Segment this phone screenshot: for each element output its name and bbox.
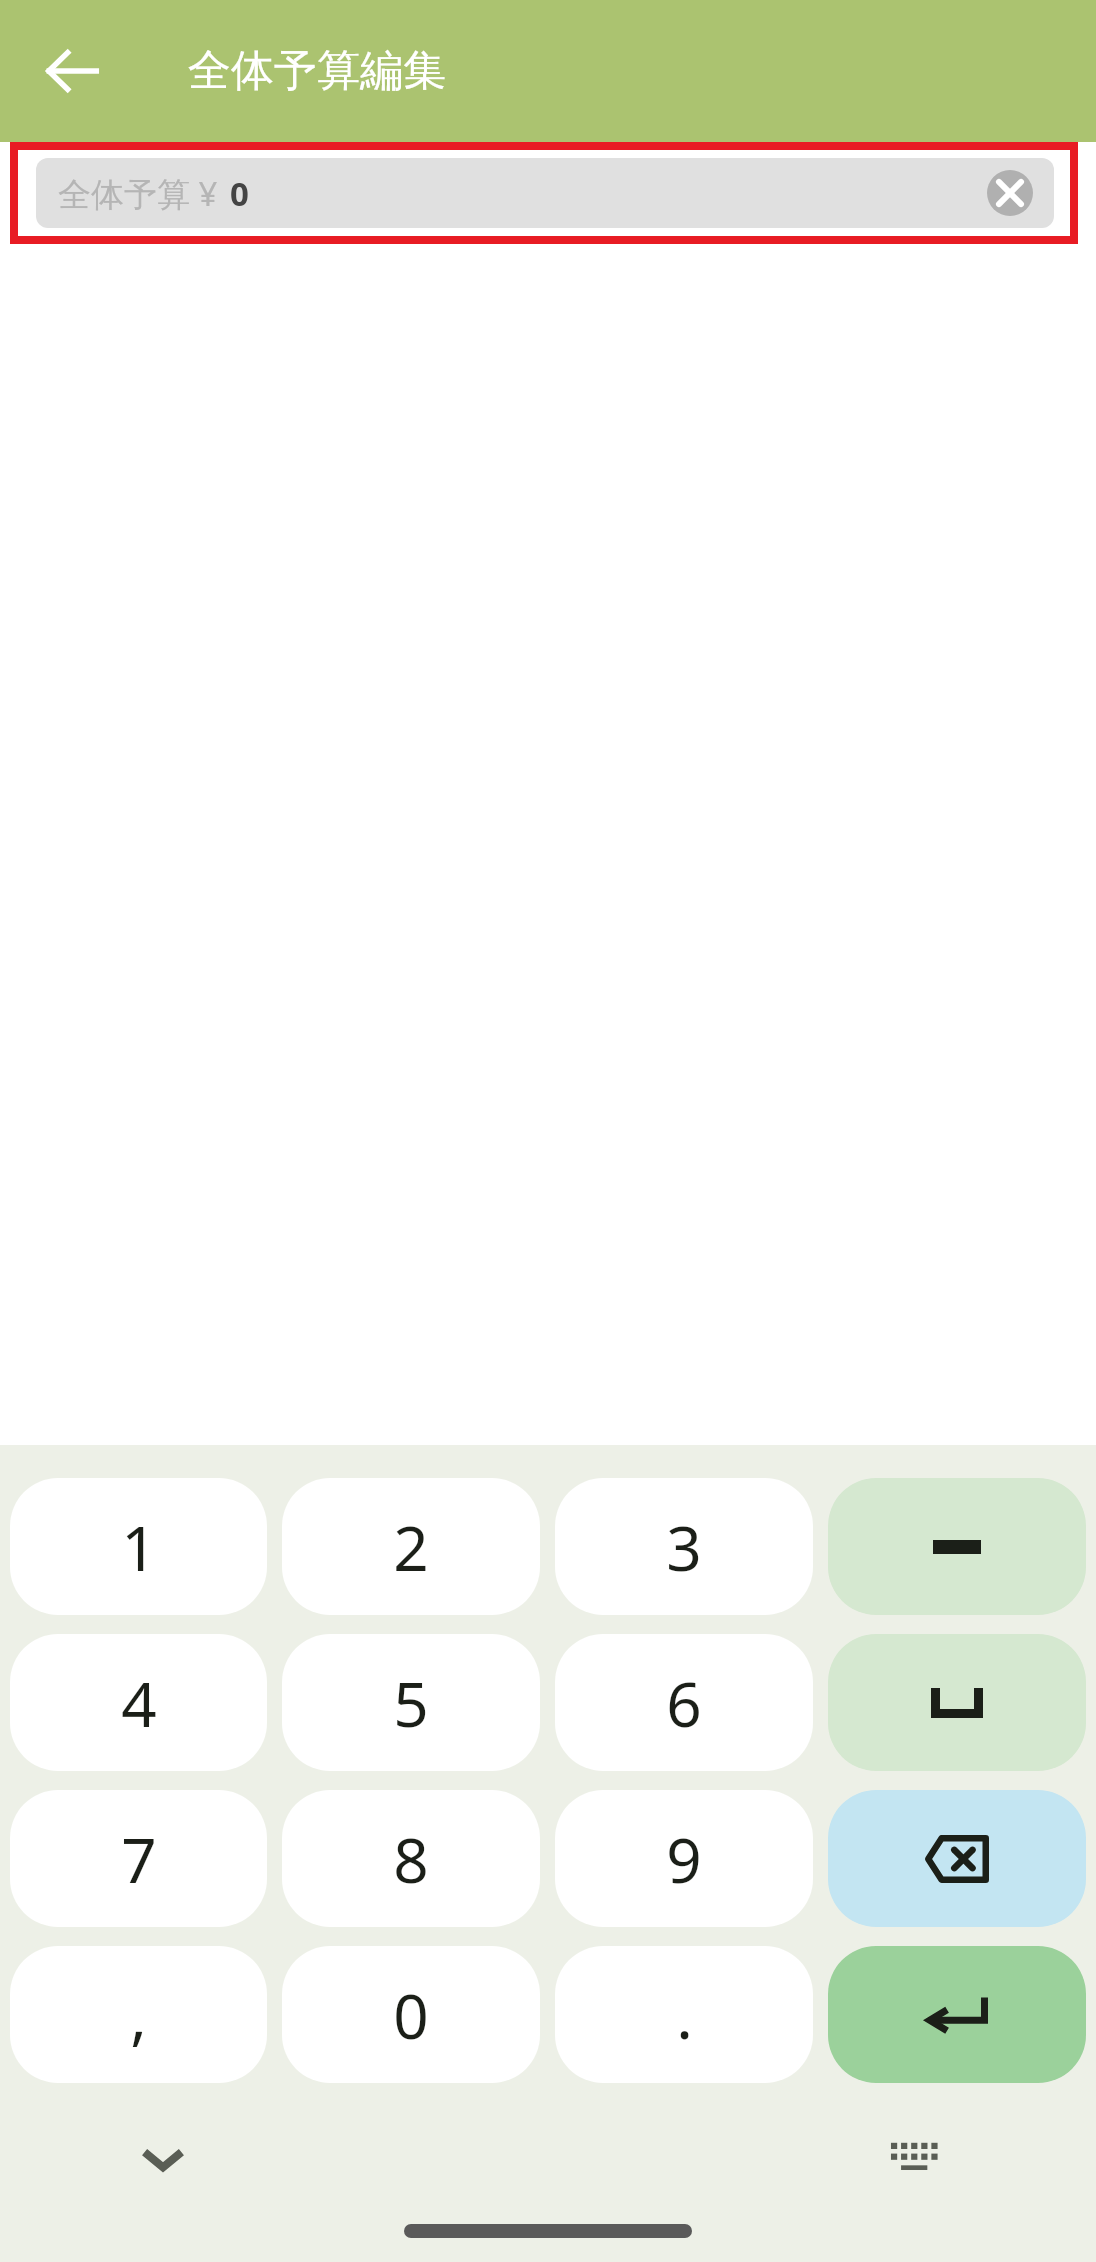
button[interactable]: 0 [282,1946,540,2083]
button[interactable]: 全体予算 ¥ [36,158,1054,228]
staticText: . [676,1973,693,2057]
button[interactable]: Clear text [984,167,1036,219]
button[interactable]: Change keyboard [857,2101,973,2217]
button[interactable]: Space [828,1634,1086,1771]
staticText: 2 [393,1505,429,1589]
staticText: 0 [393,1973,429,2057]
staticText: 1 [121,1505,157,1589]
staticText: 0 [230,171,249,216]
staticText: , [130,1973,147,2057]
button[interactable]: 4 [10,1634,267,1771]
button[interactable]: 2 [282,1478,540,1615]
button[interactable]: Back [20,19,124,123]
staticText: 7 [121,1817,157,1901]
button[interactable]: 5 [282,1634,540,1771]
button[interactable]: , [10,1946,267,2083]
staticText: 8 [393,1817,429,1901]
staticText: 3 [666,1505,702,1589]
button[interactable]: 1 [10,1478,267,1615]
button[interactable]: 3 [555,1478,813,1615]
staticText: 全体予算 ¥ [58,171,218,216]
staticText: 4 [121,1661,157,1745]
staticText: 6 [666,1661,702,1745]
button[interactable]: Minus [828,1478,1086,1615]
button[interactable]: 6 [555,1634,813,1771]
button[interactable]: Hide keyboard [105,2101,221,2217]
button[interactable]: 7 [10,1790,267,1927]
button[interactable]: . [555,1946,813,2083]
button[interactable]: Enter [828,1946,1086,2083]
button[interactable]: Backspace [828,1790,1086,1927]
button[interactable]: 9 [555,1790,813,1927]
staticText: 5 [393,1661,429,1745]
button[interactable]: 8 [282,1790,540,1927]
staticText: 9 [666,1817,702,1901]
staticText: 全体予算編集 [188,44,446,98]
